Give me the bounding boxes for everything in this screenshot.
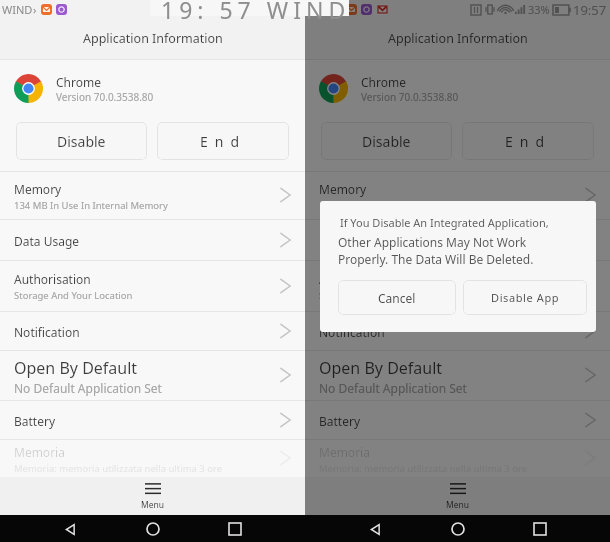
staticText: Notification [14, 324, 80, 340]
button[interactable]: Back [57, 516, 83, 542]
staticText: › [33, 2, 37, 17]
staticText: Open By Default [14, 357, 138, 379]
button[interactable]: Open By Default [305, 350, 610, 400]
button[interactable]: Battery [305, 400, 610, 439]
button[interactable]: Battery [0, 400, 305, 439]
staticText: Memory [14, 181, 62, 197]
button[interactable]: Cancel [338, 280, 456, 315]
staticText: Menu [141, 499, 165, 511]
button[interactable]: Menu [0, 477, 305, 515]
staticText: Version 70.0.3538.80 [56, 90, 154, 104]
staticText: End [505, 132, 552, 151]
staticText: Battery [14, 413, 56, 429]
staticText: Storage And Your Location [319, 289, 438, 302]
button[interactable]: Disable App [463, 280, 587, 315]
staticText: Other Applications May Not Work [338, 234, 527, 250]
button[interactable]: Recents [222, 516, 248, 542]
button[interactable]: Home [140, 516, 166, 542]
button[interactable]: Data Usage [0, 219, 305, 260]
staticText: WIND [307, 2, 338, 17]
staticText: 19: 57 WIND [161, 0, 351, 22]
staticText: Memoria: memoria utilizzata nella ultima… [14, 462, 223, 475]
staticText: Memory [319, 181, 367, 197]
button[interactable]: End [462, 122, 594, 160]
staticText: End [200, 132, 247, 151]
staticText: Chrome [361, 74, 406, 90]
staticText: 134 MB In Use In Internal Memory [14, 199, 168, 212]
staticText: No Default Application Set [14, 380, 162, 396]
staticText: Data Usage [14, 233, 80, 249]
staticText: Memoria [14, 444, 65, 460]
button[interactable]: Back [362, 516, 388, 542]
staticText: Version 70.0.3538.80 [361, 90, 459, 104]
button[interactable]: Home [445, 516, 471, 542]
staticText: Application Information [388, 30, 528, 47]
button[interactable]: Disable [16, 122, 147, 160]
button[interactable]: End [157, 122, 289, 160]
staticText: WIND [2, 2, 33, 17]
staticText: Memoria [319, 444, 370, 460]
button[interactable]: Recents [527, 516, 553, 542]
button[interactable]: Menu [305, 477, 610, 515]
button[interactable]: Memory [0, 171, 305, 219]
button[interactable]: Memory [305, 171, 610, 219]
staticText: Authorisation [319, 271, 396, 287]
staticText: Open By Default [319, 357, 443, 379]
staticText: Battery [319, 413, 361, 429]
staticText: Disable App [491, 290, 560, 305]
staticText: Data Usage [319, 233, 385, 249]
staticText: Application Information [83, 30, 223, 47]
staticText: Disable [57, 132, 106, 151]
button[interactable]: Notification [0, 311, 305, 350]
button[interactable]: Disable [321, 122, 452, 160]
staticText: No Default Application Set [319, 380, 467, 396]
staticText: Memoria: memoria utilizzata nella ultima… [319, 462, 528, 475]
staticText: Storage And Your Location [14, 289, 133, 302]
staticText: Authorisation [14, 271, 91, 287]
staticText: Disable [362, 132, 411, 151]
staticText: Menu [446, 499, 470, 511]
staticText: 33% [528, 2, 550, 17]
staticText: 19:57 [573, 1, 607, 19]
button[interactable]: Authorisation [305, 260, 610, 311]
staticText: Cancel [378, 290, 416, 306]
button[interactable]: Open By Default [0, 350, 305, 400]
staticText: 134 MB In Use In Internal Memory [319, 199, 473, 212]
staticText: If You Disable An Integrated Application… [340, 215, 549, 230]
button[interactable]: Authorisation [0, 260, 305, 311]
staticText: Notification [319, 324, 385, 340]
button[interactable]: Notification [305, 311, 610, 350]
staticText: Properly. The Data Will Be Deleted. [338, 251, 534, 267]
button[interactable]: Memoria [0, 439, 305, 477]
button[interactable]: Data Usage [305, 219, 610, 260]
staticText: Chrome [56, 74, 101, 90]
staticText: › [338, 2, 342, 17]
